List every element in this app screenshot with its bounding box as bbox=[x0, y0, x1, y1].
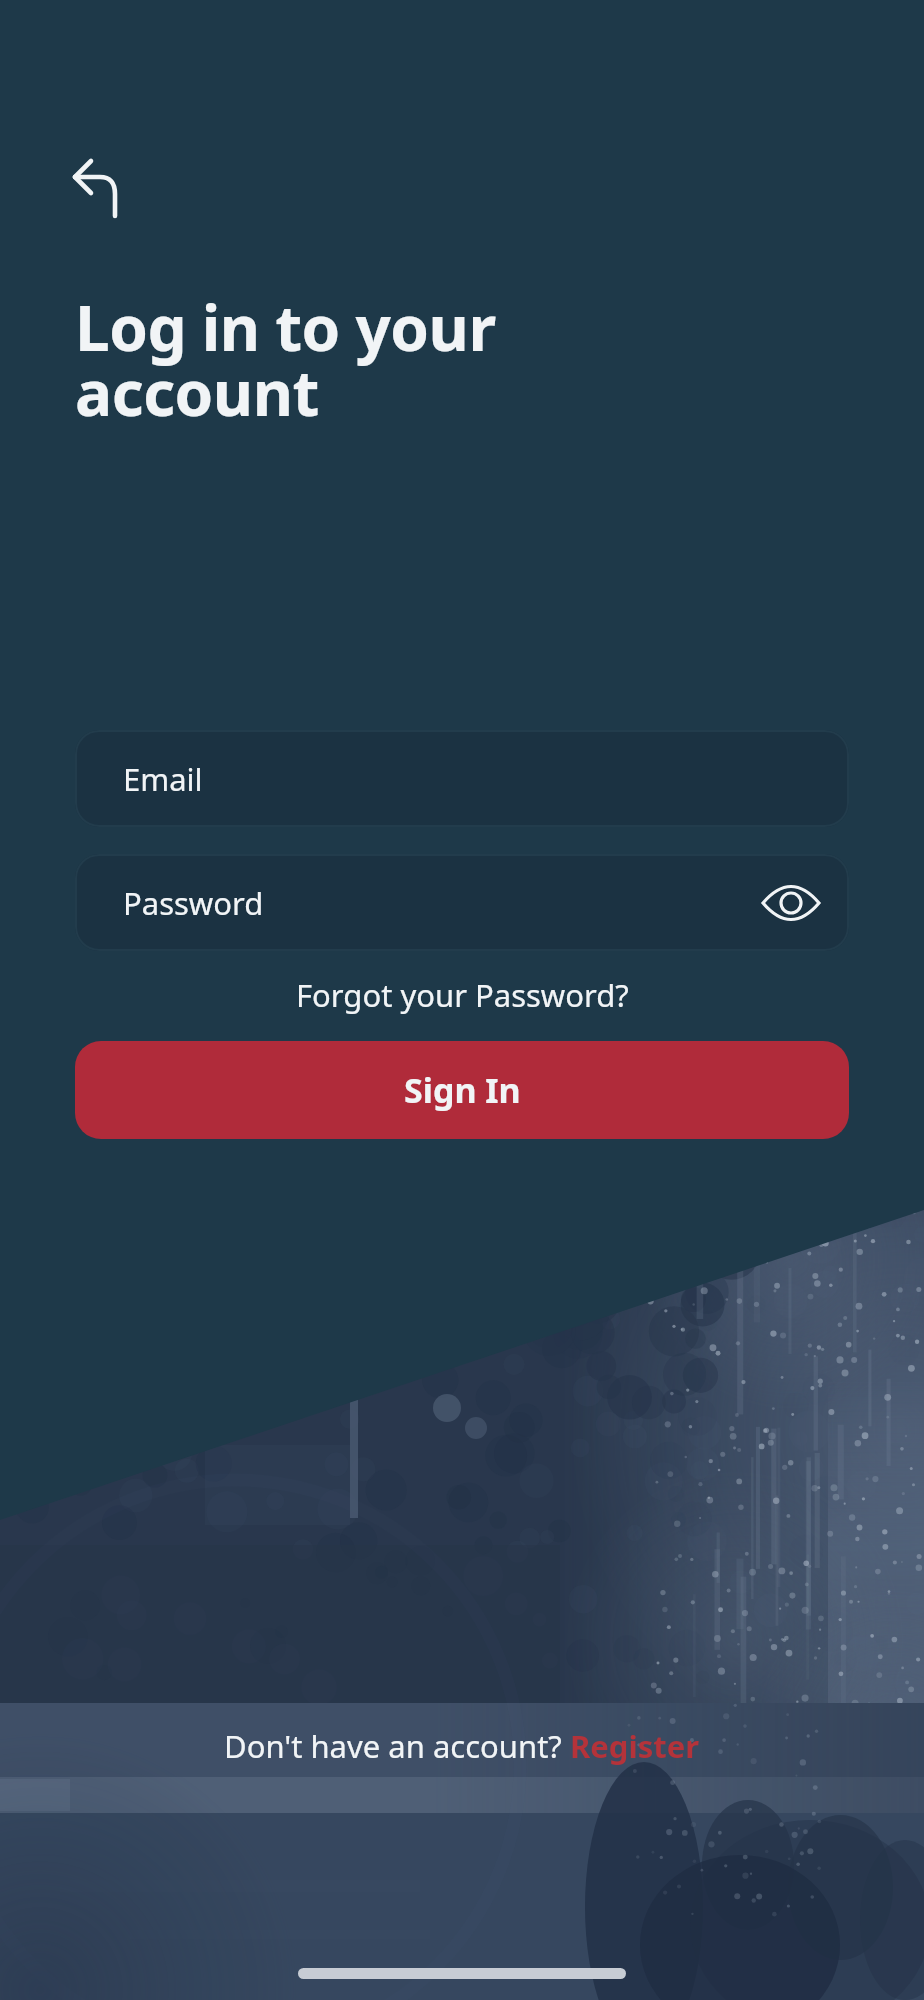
staticText: Register bbox=[570, 1725, 700, 1767]
button[interactable] bbox=[763, 883, 819, 923]
button[interactable]: Forgot your Password? bbox=[296, 974, 629, 1016]
staticText: Don't have an account? bbox=[224, 1725, 570, 1767]
button[interactable] bbox=[56, 144, 136, 234]
staticText: Email bbox=[123, 758, 203, 800]
staticText: Password bbox=[123, 882, 264, 924]
button[interactable]: Sign In bbox=[75, 1041, 849, 1139]
button[interactable]: Email bbox=[75, 730, 849, 827]
button[interactable]: Password bbox=[75, 854, 849, 951]
staticText: Log in to your account bbox=[75, 285, 496, 434]
button[interactable]: Don't have an account? bbox=[0, 1725, 924, 1767]
staticText: Sign In bbox=[404, 1067, 521, 1113]
